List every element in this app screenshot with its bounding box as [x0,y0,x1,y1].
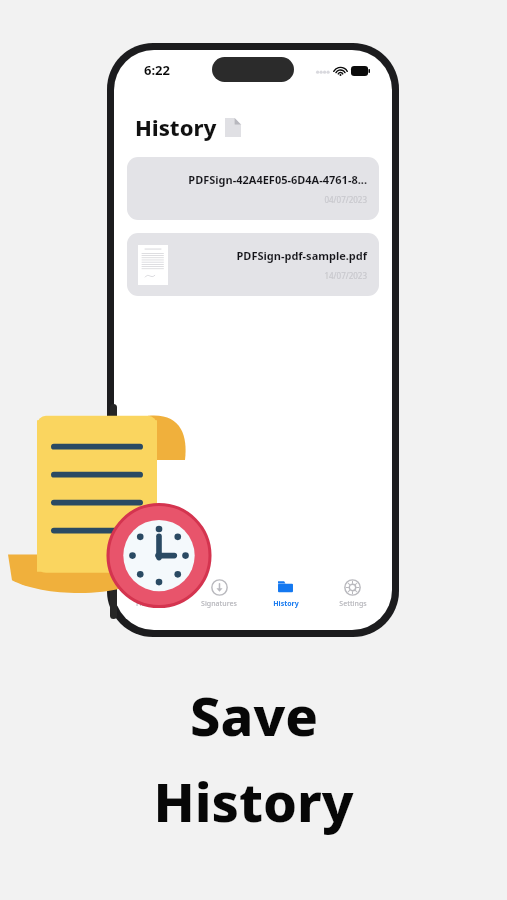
staticText: 14/07/2023 [324,270,367,281]
staticText: History [135,112,217,142]
staticText: 6:22 [144,61,170,79]
staticText: Save [190,678,318,752]
staticText: PDFSign-pdf-sample.pdf [236,248,367,263]
button[interactable]: PDFSign-42A4EF05-6D4A-4761-8... [127,157,379,220]
button[interactable]: Settings [319,574,386,626]
button[interactable]: PDFSign-pdf-sample.pdf [127,233,379,296]
button[interactable]: History [252,574,319,626]
button[interactable]: Signatures [186,574,252,626]
staticText: File Picker [136,599,170,609]
staticText: Signatures [201,599,237,609]
button[interactable]: File Picker [120,574,186,626]
staticText: 04/07/2023 [324,194,367,205]
staticText: Settings [339,599,367,609]
staticText: History [273,599,299,609]
staticText: History [153,764,354,838]
staticText: PDFSign-42A4EF05-6D4A-4761-8... [188,172,367,187]
